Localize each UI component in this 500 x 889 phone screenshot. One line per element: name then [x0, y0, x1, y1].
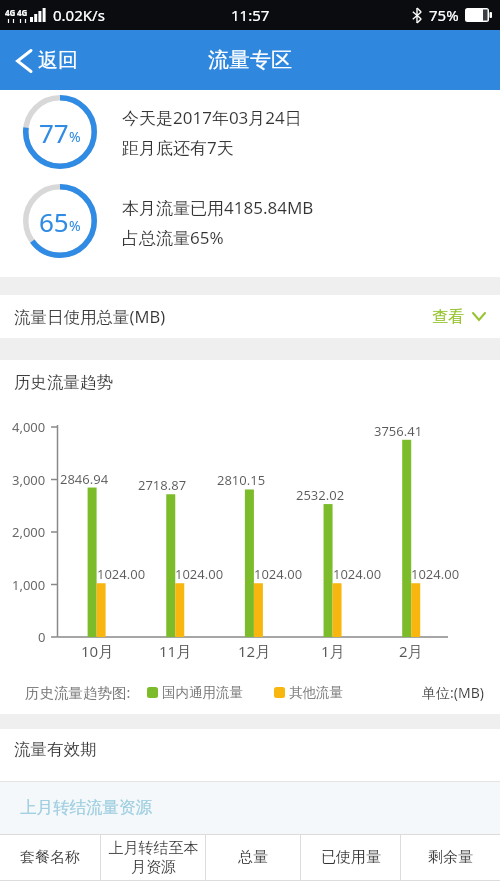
button[interactable]: 套餐名称	[0, 835, 100, 880]
staticText: 0	[38, 628, 46, 646]
button[interactable]: 返回	[16, 48, 78, 73]
staticText: 0.02K/s	[53, 5, 105, 25]
staticText: 1月	[321, 641, 345, 661]
staticText: 1024.00	[175, 565, 224, 583]
staticText: 75%	[429, 5, 459, 25]
staticText: 流量专区	[208, 47, 292, 73]
staticText: 2718.87	[138, 476, 187, 494]
staticText: 今天是2017年03月24日	[122, 106, 302, 129]
staticText: 1024.00	[254, 565, 303, 583]
staticText: 11月	[159, 641, 192, 661]
staticText: 1024.00	[411, 565, 460, 583]
staticText: 流量日使用总量(MB)	[14, 305, 166, 328]
staticText: 距月底还有7天	[122, 136, 234, 159]
staticText: 2846.94	[60, 470, 109, 488]
staticText: 其他流量	[289, 684, 343, 701]
staticText: 本月流量已用4185.84MB	[122, 196, 314, 219]
staticText: 3756.41	[374, 422, 423, 440]
staticText: 3,000	[12, 471, 46, 489]
staticText: 10月	[81, 641, 114, 661]
staticText: 返回	[38, 48, 78, 73]
staticText: 4G	[5, 7, 16, 18]
staticText: 国内通用流量	[162, 684, 243, 701]
staticText: 上月转结流量资源	[20, 797, 152, 818]
staticText: 2月	[399, 641, 423, 661]
button[interactable]: 流量日使用总量(MB)	[0, 295, 500, 338]
staticText: 历史流量趋势图:	[25, 682, 131, 702]
staticText: 4G	[17, 7, 28, 18]
staticText: 11:57	[231, 5, 270, 25]
staticText: 已使用量	[321, 848, 381, 867]
staticText: 查看	[432, 307, 464, 327]
button[interactable]: 总量	[206, 835, 300, 880]
staticText: 4,000	[12, 418, 46, 436]
staticText: 77	[39, 115, 69, 150]
staticText: %	[69, 216, 81, 235]
staticText: 单位:(MB)	[422, 683, 484, 702]
button[interactable]: 剩余量	[401, 835, 500, 880]
staticText: 2810.15	[217, 471, 266, 489]
button[interactable]: 上月转结流量资源	[0, 781, 500, 834]
staticText: 套餐名称	[20, 848, 80, 867]
staticText: 12月	[238, 641, 271, 661]
staticText: %	[69, 127, 81, 146]
staticText: 2,000	[12, 523, 46, 541]
staticText: 1024.00	[333, 565, 382, 583]
button[interactable]: 上月转结至本月资源	[101, 835, 205, 880]
staticText: 剩余量	[428, 848, 473, 867]
staticText: 历史流量趋势	[14, 372, 113, 393]
staticText: 流量有效期	[14, 739, 97, 760]
staticText: 2532.02	[296, 486, 345, 504]
staticText: 上月转结至本月资源	[106, 839, 201, 877]
button[interactable]: 已使用量	[301, 835, 400, 880]
staticText: 1,000	[12, 576, 46, 594]
staticText: 占总流量65%	[122, 226, 224, 249]
staticText: 总量	[238, 848, 268, 867]
staticText: 65	[39, 204, 69, 239]
staticText: 1024.00	[97, 565, 146, 583]
